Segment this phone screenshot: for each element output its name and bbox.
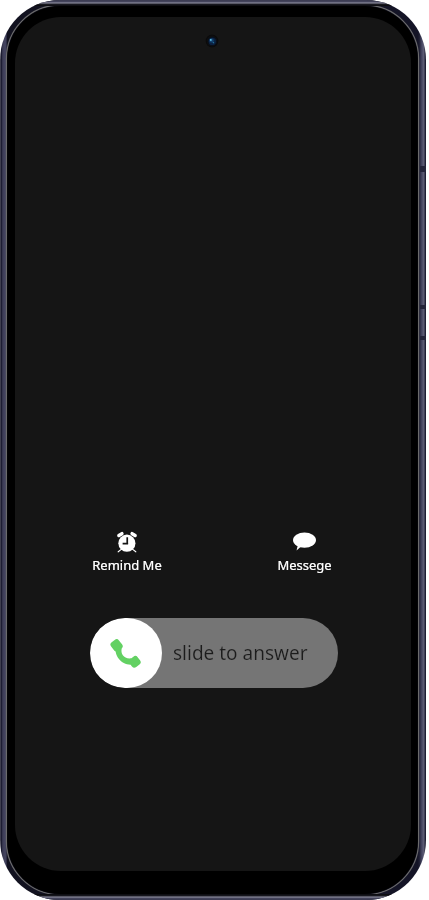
button[interactable]: slide to answer: [90, 618, 338, 688]
staticText: Messege: [277, 556, 332, 574]
button[interactable]: Remind Me: [87, 529, 167, 574]
button[interactable]: Message: [264, 529, 344, 574]
staticText: slide to answer: [173, 640, 308, 666]
staticText: Remind Me: [92, 556, 162, 574]
